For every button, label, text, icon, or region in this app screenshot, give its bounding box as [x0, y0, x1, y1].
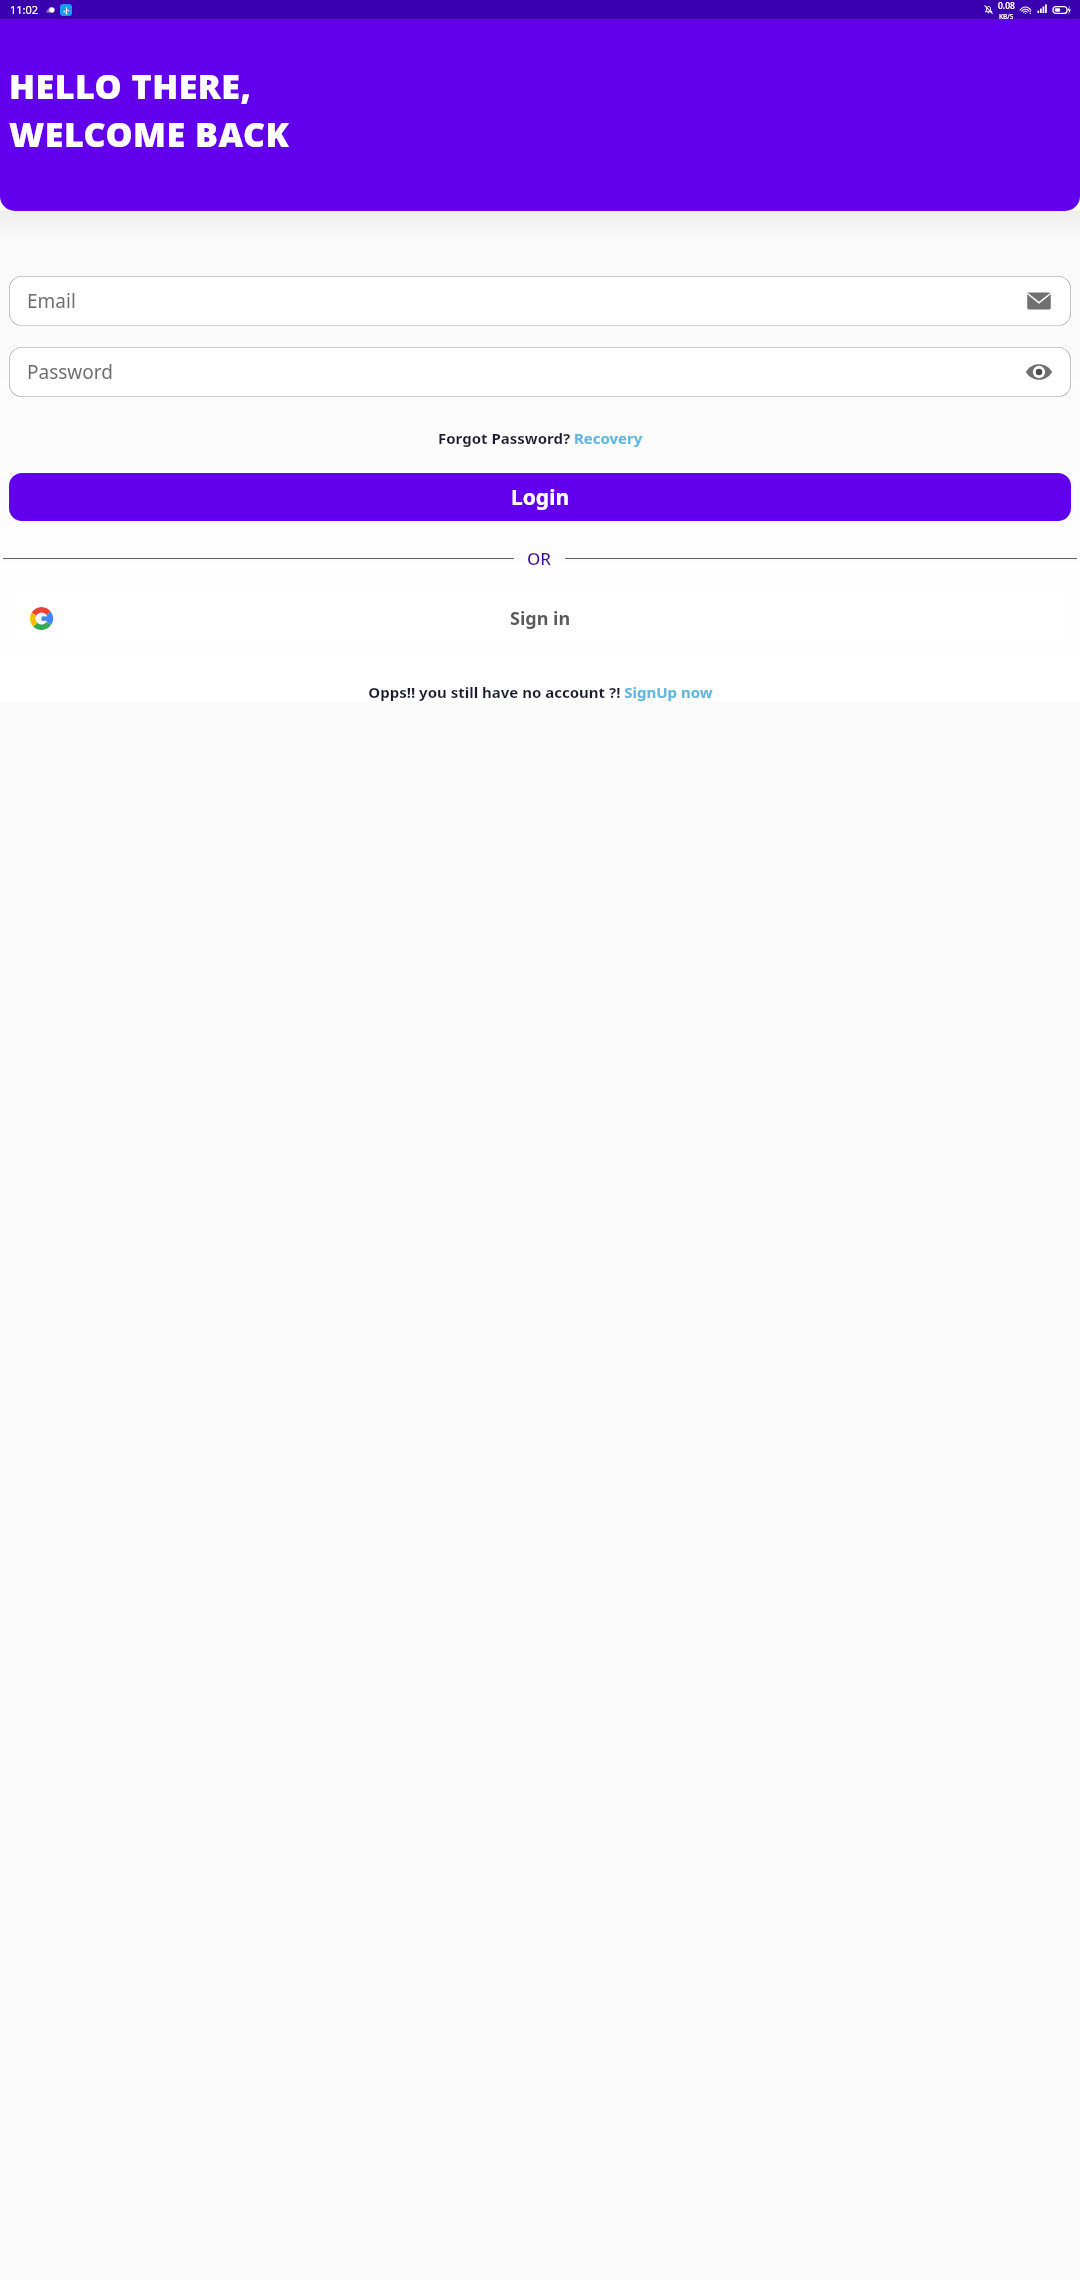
- button[interactable]: Opps!! you still have no account ?! Sign…: [368, 682, 713, 702]
- staticText: HELLO THERE,: [9, 63, 252, 109]
- other: Show password: [1025, 358, 1053, 386]
- staticText: Login: [511, 483, 570, 512]
- button[interactable]: Email: [9, 276, 1071, 326]
- staticText: Opps!! you still have no account ?! Sign…: [368, 682, 713, 702]
- other: Email: [1025, 287, 1053, 315]
- button[interactable]: Password: [9, 347, 1071, 397]
- staticText: Password: [27, 359, 113, 385]
- staticText: WELCOME BACK: [9, 111, 290, 157]
- staticText: Email: [27, 288, 76, 314]
- staticText: KB/S: [999, 12, 1014, 19]
- button[interactable]: Login: [9, 473, 1071, 521]
- staticText: Sign in: [510, 606, 571, 631]
- staticText: 0.08: [998, 0, 1015, 12]
- button[interactable]: Forgot Password? Recovery: [438, 428, 643, 448]
- staticText: OR: [527, 547, 552, 570]
- staticText: Forgot Password? Recovery: [438, 428, 643, 448]
- staticText: 11:02: [10, 2, 39, 17]
- button[interactable]: Sign in: [11, 592, 1069, 644]
